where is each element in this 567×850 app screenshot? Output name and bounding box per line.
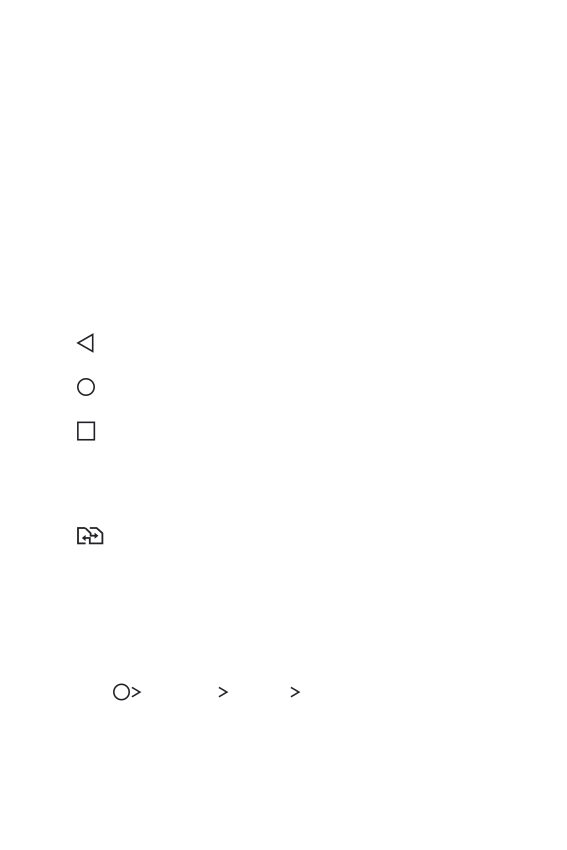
button[interactable]: Playback	[76, 321, 536, 365]
button[interactable]: Stop	[76, 409, 536, 453]
button[interactable]: Swap documents	[77, 527, 537, 545]
button[interactable]: Record	[76, 365, 536, 409]
button[interactable]: Home	[113, 681, 130, 703]
